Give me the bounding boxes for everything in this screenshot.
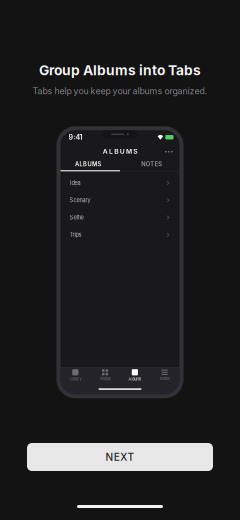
staticText: Trips [69,231,81,238]
staticText: Photos [100,377,111,381]
staticText: Group Albums into Tabs [39,62,201,79]
staticText: NOTES [141,161,162,168]
button[interactable]: Trips [60,226,179,243]
button[interactable]: Library [60,368,90,383]
staticText: NEXT [105,451,134,463]
button[interactable]: More options [163,146,174,157]
staticText: Idea [69,179,80,186]
button[interactable]: Notes [150,368,180,383]
button[interactable]: Idea [60,174,179,192]
button[interactable]: NOTES [120,158,183,171]
staticText: 9:41 [68,133,82,141]
staticText: ALBUMS [103,147,137,155]
button[interactable]: Scenary [60,192,179,209]
button[interactable]: ALBUMS [56,158,120,171]
staticText: Notes [160,376,170,381]
button[interactable]: Albums [120,368,150,383]
staticText: Library [69,377,81,381]
button[interactable]: Selfie [60,209,179,226]
staticText: Albums [128,377,141,381]
staticText: Tabs help you keep your albums organized… [32,86,207,96]
button[interactable]: Photos [90,368,120,383]
staticText: ALBUMS [75,161,101,168]
staticText: ••• [164,148,173,154]
staticText: Selfie [69,214,83,221]
button[interactable]: NEXT [27,443,213,471]
staticText: Scenary [69,197,90,204]
